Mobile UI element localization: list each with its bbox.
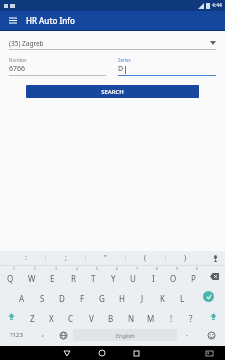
- staticText: V: [89, 313, 94, 324]
- button[interactable]: D: [52, 286, 72, 306]
- button[interactable]: !: [161, 306, 181, 326]
- staticText: B: [108, 313, 114, 324]
- button[interactable]: 7: [123, 266, 143, 286]
- button[interactable]: Series: [118, 57, 216, 76]
- button[interactable]: C: [61, 306, 81, 326]
- button[interactable]: ?123: [0, 326, 33, 344]
- button[interactable]: X: [42, 306, 61, 326]
- button[interactable]: H: [112, 286, 132, 306]
- button[interactable]: ?: [181, 306, 201, 326]
- staticText: 4:44: [212, 2, 222, 9]
- staticText: D: [118, 64, 124, 74]
- button[interactable]: ,: [33, 326, 53, 344]
- button[interactable]: 3: [42, 266, 63, 286]
- button[interactable]: Voice input: [205, 251, 225, 265]
- button[interactable]: Enter: [195, 286, 221, 306]
- staticText: SEARCH: [101, 88, 124, 96]
- staticText: H: [119, 293, 125, 304]
- staticText: ): [184, 253, 187, 263]
- staticText: N: [128, 313, 135, 324]
- button[interactable]: Recent apps: [119, 346, 154, 360]
- button[interactable]: Shift: [201, 306, 225, 326]
- button[interactable]: Shift: [0, 306, 23, 326]
- button[interactable]: ": [86, 251, 125, 265]
- button[interactable]: J: [132, 286, 152, 306]
- button[interactable]: Number: [9, 57, 106, 76]
- staticText: X: [49, 313, 54, 324]
- staticText: 6: [116, 266, 119, 271]
- staticText: 6766: [9, 64, 26, 74]
- button[interactable]: 0: [183, 266, 203, 286]
- staticText: M: [147, 313, 155, 324]
- staticText: 8: [156, 266, 159, 271]
- staticText: C: [68, 313, 74, 324]
- button[interactable]: SEARCH: [26, 85, 199, 98]
- button[interactable]: 9: [163, 266, 183, 286]
- staticText: Series: [118, 57, 131, 63]
- button[interactable]: (35) Zagreb: [9, 37, 216, 50]
- staticText: 9: [176, 266, 179, 271]
- button[interactable]: (: [126, 251, 165, 265]
- button[interactable]: Backspace: [203, 266, 225, 286]
- staticText: English: [116, 332, 135, 339]
- staticText: 1: [13, 266, 16, 271]
- staticText: 0: [196, 266, 199, 271]
- button[interactable]: 4: [63, 266, 83, 286]
- staticText: HR Auto Info: [26, 15, 75, 26]
- staticText: F: [80, 293, 85, 304]
- button[interactable]: Home: [84, 346, 119, 360]
- button[interactable]: B: [101, 306, 121, 326]
- button[interactable]: S: [32, 286, 52, 306]
- button[interactable]: Z: [23, 306, 42, 326]
- staticText: ?123: [10, 331, 23, 339]
- staticText: L: [180, 293, 185, 304]
- staticText: I: [152, 273, 155, 284]
- staticText: ?: [189, 313, 193, 324]
- staticText: O: [170, 273, 177, 284]
- staticText: ;: [65, 253, 67, 263]
- button[interactable]: ): [166, 251, 205, 265]
- staticText: 4: [76, 266, 79, 271]
- staticText: P: [191, 273, 196, 284]
- button[interactable]: Emoji: [197, 326, 225, 344]
- staticText: 2: [34, 266, 37, 271]
- button[interactable]: 6: [103, 266, 123, 286]
- staticText: 7: [136, 266, 139, 271]
- staticText: (: [144, 253, 147, 263]
- button[interactable]: L: [172, 286, 192, 306]
- button[interactable]: Back: [49, 346, 84, 360]
- button[interactable]: M: [141, 306, 161, 326]
- button[interactable]: English: [73, 329, 177, 341]
- button[interactable]: .: [177, 326, 197, 344]
- button[interactable]: 1: [0, 266, 21, 286]
- staticText: Number: [9, 57, 27, 63]
- staticText: K: [160, 293, 165, 304]
- staticText: .: [186, 329, 188, 339]
- button[interactable]: F: [72, 286, 92, 306]
- staticText: R: [71, 273, 76, 284]
- button[interactable]: :: [6, 251, 45, 265]
- staticText: T: [91, 273, 96, 284]
- staticText: E: [50, 273, 55, 284]
- staticText: 3: [55, 266, 58, 271]
- button[interactable]: 2: [21, 266, 42, 286]
- button[interactable]: A: [11, 286, 32, 306]
- staticText: S: [40, 293, 45, 304]
- button[interactable]: V: [81, 306, 101, 326]
- button[interactable]: G: [92, 286, 112, 306]
- staticText: A: [19, 293, 25, 304]
- staticText: U: [130, 273, 136, 284]
- button[interactable]: 5: [83, 266, 103, 286]
- button[interactable]: ;: [46, 251, 85, 265]
- staticText: ": [104, 253, 107, 263]
- staticText: J: [141, 293, 144, 304]
- button[interactable]: K: [152, 286, 172, 306]
- staticText: G: [99, 293, 105, 304]
- staticText: 5: [96, 266, 99, 271]
- button[interactable]: 8: [143, 266, 163, 286]
- button[interactable]: Keyboard layout: [193, 346, 225, 360]
- staticText: (35) Zagreb: [9, 39, 210, 48]
- button[interactable]: Change keyboard language: [53, 326, 73, 344]
- button[interactable]: Open navigation menu: [6, 14, 20, 28]
- button[interactable]: N: [121, 306, 141, 326]
